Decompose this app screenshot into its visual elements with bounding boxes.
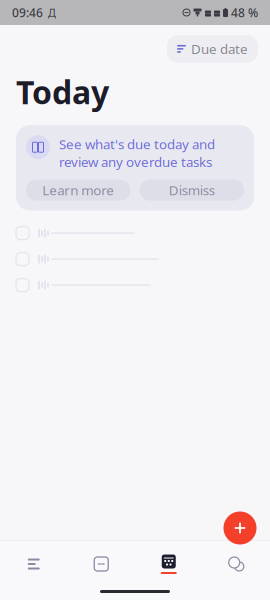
button[interactable]: Menu — [0, 545, 67, 583]
staticText: Due date — [191, 40, 248, 58]
button[interactable]: Add task — [218, 506, 262, 550]
staticText: 48 % — [231, 4, 258, 20]
staticText: Today — [16, 71, 109, 113]
button[interactable]: Due date — [167, 35, 258, 63]
staticText: Learn more — [42, 181, 114, 199]
button[interactable]: Today — [135, 545, 202, 583]
button[interactable]: Messages — [202, 545, 270, 583]
staticText: Д — [48, 5, 56, 20]
staticText: Dismiss — [169, 181, 215, 199]
button[interactable]: Inbox — [67, 545, 135, 583]
button[interactable]: Dismiss — [139, 180, 244, 201]
staticText: 09:46 — [12, 4, 43, 20]
staticText: See what's due today and review any over… — [59, 135, 215, 171]
button[interactable]: Learn more — [26, 180, 130, 201]
